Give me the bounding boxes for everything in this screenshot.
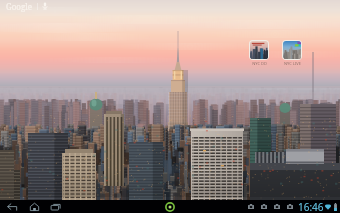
staticText: Google bbox=[6, 1, 33, 12]
button[interactable]: Screenshot notification bbox=[246, 200, 255, 213]
button[interactable]: 16:46 bbox=[298, 200, 324, 213]
button[interactable]: NYC LIVE bbox=[280, 40, 304, 66]
button[interactable]: Wi-Fi bbox=[323, 200, 332, 213]
button[interactable]: Screenshot notification bbox=[259, 200, 268, 213]
staticText: NYC LIVE bbox=[284, 61, 301, 66]
staticText: 16:46 bbox=[298, 200, 324, 213]
button[interactable]: Screenshot notification bbox=[285, 200, 294, 213]
button[interactable]: Battery bbox=[331, 200, 339, 213]
button[interactable]: Recent apps bbox=[48, 200, 63, 213]
button[interactable]: Screen cast indicator bbox=[165, 202, 175, 212]
button[interactable]: Screenshot notification bbox=[272, 200, 281, 213]
staticText: NYC DD bbox=[252, 61, 267, 66]
button[interactable]: Google bbox=[6, 0, 50, 12]
button[interactable]: NYC DD bbox=[247, 40, 271, 66]
button[interactable]: Home bbox=[27, 200, 42, 213]
button[interactable]: Back bbox=[5, 200, 20, 213]
